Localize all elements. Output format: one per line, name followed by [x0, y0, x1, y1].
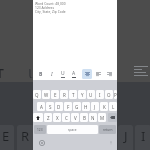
button[interactable]: H: [82, 102, 90, 111]
staticText: A: [72, 70, 76, 77]
staticText: City, State, Zip Code: [35, 9, 66, 13]
staticText: T: [72, 92, 75, 98]
staticText: M: [100, 115, 105, 121]
staticText: P: [114, 92, 117, 98]
staticText: F: [67, 104, 70, 110]
button[interactable]: U: [87, 90, 95, 99]
button[interactable]: E: [51, 90, 59, 99]
staticText: A: [40, 104, 43, 110]
button[interactable]: Underline: [58, 69, 68, 79]
button[interactable]: Backspace: [108, 113, 117, 122]
staticText: J: [94, 104, 96, 110]
staticText: B: [39, 71, 43, 78]
button[interactable]: S: [46, 102, 54, 111]
button[interactable]: G: [73, 102, 81, 111]
button[interactable]: Z: [44, 113, 52, 122]
button[interactable]: Text color: [69, 69, 79, 79]
staticText: X: [56, 115, 59, 121]
button[interactable]: I: [96, 90, 104, 99]
staticText: R: [21, 127, 30, 145]
button[interactable]: R: [60, 90, 68, 99]
button[interactable]: Bold: [36, 69, 46, 79]
staticText: L: [112, 104, 115, 110]
button[interactable]: A: [37, 102, 45, 111]
button[interactable]: W: [42, 90, 50, 99]
button[interactable]: T: [69, 90, 77, 99]
staticText: I: [51, 71, 53, 78]
staticText: R: [63, 92, 66, 98]
button[interactable]: Q: [33, 90, 41, 99]
staticText: Y: [81, 92, 84, 98]
button[interactable]: Shift: [33, 113, 43, 122]
staticText: 123: [37, 128, 43, 132]
button[interactable]: M: [98, 113, 106, 122]
button[interactable]: Italic: [47, 69, 57, 79]
staticText: C: [65, 115, 68, 121]
staticText: Z: [47, 115, 50, 121]
button[interactable]: C: [62, 113, 70, 122]
button[interactable]: P: [114, 90, 117, 99]
staticText: U: [28, 64, 34, 78]
staticText: E: [2, 127, 10, 145]
staticText: O: [107, 92, 111, 98]
button[interactable]: space: [47, 125, 98, 134]
staticText: I: [141, 127, 146, 145]
button[interactable]: X: [53, 113, 61, 122]
staticText: N: [91, 115, 95, 121]
staticText: space: [68, 128, 77, 132]
staticText: W: [44, 92, 49, 98]
button[interactable]: O: [105, 90, 113, 99]
button[interactable]: return: [99, 125, 116, 134]
button[interactable]: 123: [34, 125, 46, 134]
button[interactable]: V: [71, 113, 79, 122]
staticText: J: [124, 127, 128, 145]
staticText: Word Count: 48,000: [35, 1, 66, 5]
button[interactable]: D: [55, 102, 63, 111]
staticText: U: [89, 92, 93, 98]
button[interactable]: Align: [104, 69, 114, 79]
staticText: K: [103, 104, 106, 110]
button[interactable]: Align: [82, 69, 92, 79]
button[interactable]: Dictation: [108, 140, 114, 146]
button[interactable]: L: [109, 102, 117, 111]
staticText: E: [54, 92, 57, 98]
staticText: I: [99, 92, 101, 98]
button[interactable]: Y: [78, 90, 86, 99]
staticText: Q: [35, 92, 39, 98]
staticText: S: [49, 104, 52, 110]
staticText: G: [75, 104, 79, 110]
staticText: T: [0, 64, 4, 78]
staticText: V: [74, 115, 77, 121]
button[interactable]: F: [64, 102, 72, 111]
button[interactable]: N: [89, 113, 97, 122]
button[interactable]: Emoji keyboard: [39, 140, 45, 146]
button[interactable]: Align: [93, 69, 103, 79]
staticText: U: [61, 70, 65, 77]
staticText: H: [84, 104, 88, 110]
button[interactable]: B: [80, 113, 88, 122]
button[interactable]: J: [91, 102, 99, 111]
staticText: return: [103, 128, 113, 132]
staticText: 123 Address: [35, 5, 54, 9]
button[interactable]: K: [100, 102, 108, 111]
staticText: D: [57, 104, 61, 110]
staticText: B: [83, 115, 86, 121]
